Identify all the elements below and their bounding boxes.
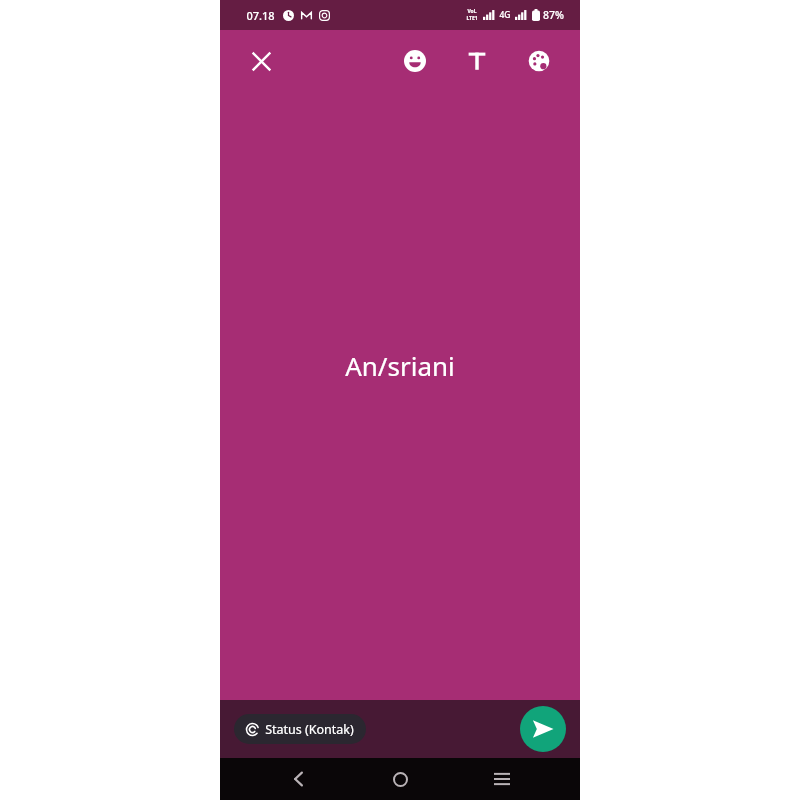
- button[interactable]: Emoji: [394, 40, 436, 82]
- staticText: 07.18: [246, 8, 275, 23]
- staticText: 87%: [543, 8, 564, 22]
- button[interactable]: Status (Kontak): [234, 714, 366, 744]
- button[interactable]: Close: [240, 40, 282, 82]
- staticText: Status (Kontak): [265, 721, 354, 738]
- staticText: An/sriani: [345, 348, 455, 383]
- staticText: VoL: [467, 8, 477, 15]
- staticText: LTE1: [466, 15, 478, 22]
- button[interactable]: Send: [520, 706, 566, 752]
- button[interactable]: Background colour: [518, 40, 560, 82]
- button[interactable]: Text style: [456, 40, 498, 82]
- button[interactable]: Home: [377, 758, 423, 800]
- button[interactable]: Back: [276, 758, 322, 800]
- staticText: 4G: [499, 9, 511, 21]
- button[interactable]: Recent apps: [479, 758, 525, 800]
